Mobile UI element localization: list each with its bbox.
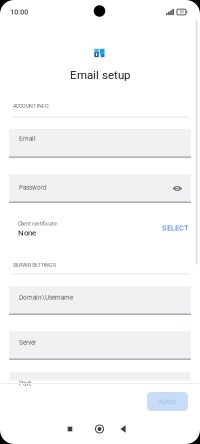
staticText: 10:00 (10, 8, 28, 16)
staticText: SERVER SETTINGS (13, 262, 56, 268)
button[interactable]: Back (112, 418, 134, 440)
staticText: Server (19, 339, 36, 346)
staticText: Email (19, 135, 36, 142)
staticText: ACCOUNT INFO (13, 103, 49, 109)
staticText: Client certificate (18, 220, 57, 227)
button[interactable]: Home (88, 418, 110, 440)
staticText: Email setup (70, 68, 130, 82)
button[interactable]: SELECT (156, 220, 194, 236)
staticText: Domain\Username (19, 294, 73, 301)
staticText: None (18, 228, 36, 237)
staticText: Port (19, 380, 31, 387)
button[interactable]: Next (147, 392, 188, 411)
staticText: 50 (179, 10, 183, 14)
staticText: Password (19, 184, 47, 191)
staticText: SELECT (162, 223, 189, 232)
button[interactable]: Recent apps (59, 418, 81, 440)
staticText: Next (159, 397, 176, 406)
